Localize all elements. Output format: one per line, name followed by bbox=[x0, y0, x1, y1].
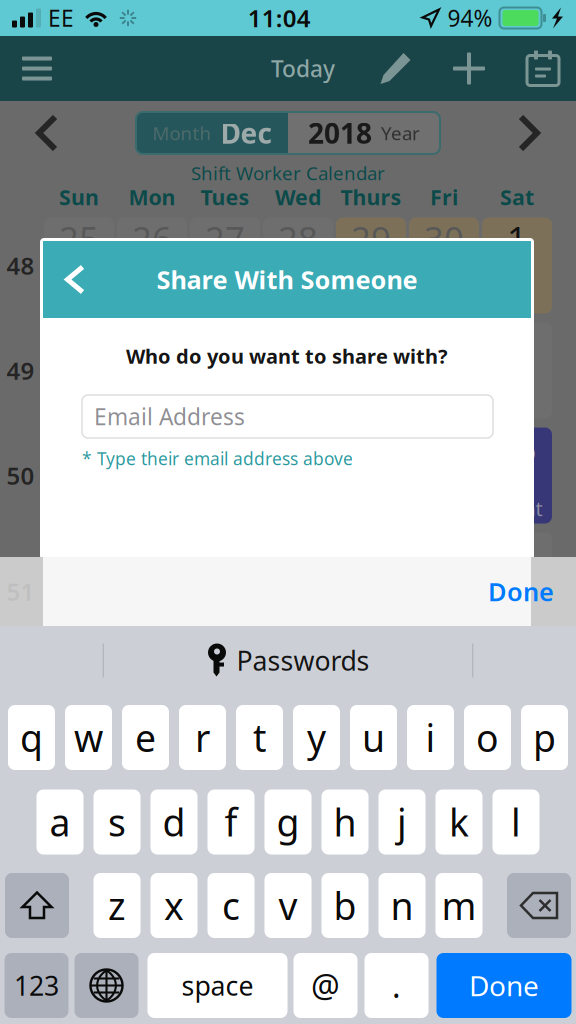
staticText: o bbox=[476, 713, 499, 762]
button[interactable]: b bbox=[321, 873, 368, 938]
button[interactable]: 123 bbox=[4, 953, 68, 1018]
staticText: 28 bbox=[278, 215, 318, 261]
button[interactable]: h bbox=[321, 789, 368, 854]
button[interactable]: Switch keyboard bbox=[74, 953, 138, 1018]
button[interactable]: Edit bbox=[366, 37, 426, 99]
staticText: 18 bbox=[205, 530, 245, 576]
button[interactable]: Shift bbox=[5, 873, 69, 938]
button[interactable]: t bbox=[236, 705, 283, 770]
button[interactable]: y bbox=[293, 705, 340, 770]
button[interactable]: f bbox=[207, 789, 254, 854]
staticText: 51 bbox=[6, 565, 34, 596]
staticText: Passwords bbox=[236, 643, 369, 678]
button[interactable]: Back bbox=[43, 241, 107, 318]
button[interactable]: p bbox=[521, 705, 568, 770]
staticText: f bbox=[224, 797, 237, 847]
staticText: 13 bbox=[351, 425, 391, 471]
staticText: 5 bbox=[288, 320, 308, 366]
button[interactable]: . bbox=[364, 953, 428, 1018]
button[interactable]: Done bbox=[436, 953, 571, 1018]
staticText: Month bbox=[152, 121, 211, 145]
staticText: Night bbox=[491, 495, 542, 522]
staticText: p bbox=[533, 713, 556, 762]
staticText: c bbox=[222, 881, 240, 930]
staticText: h bbox=[333, 797, 356, 847]
staticText: 26 bbox=[132, 215, 172, 261]
button[interactable]: m bbox=[435, 873, 482, 938]
staticText: 25 bbox=[59, 215, 99, 261]
staticText: Tues bbox=[200, 183, 249, 211]
staticText: 20 bbox=[351, 530, 391, 576]
button[interactable]: g bbox=[264, 789, 311, 854]
staticText: 16 bbox=[59, 530, 99, 576]
button[interactable]: c bbox=[207, 873, 254, 938]
staticText: Email Address bbox=[94, 401, 245, 431]
staticText: 48 bbox=[6, 250, 34, 281]
staticText: Fri bbox=[430, 183, 458, 211]
staticText: u bbox=[362, 713, 385, 762]
button[interactable]: r bbox=[179, 705, 226, 770]
button[interactable]: e bbox=[122, 705, 169, 770]
staticText: v bbox=[278, 881, 297, 930]
staticText: m bbox=[441, 881, 476, 930]
staticText: r bbox=[195, 713, 210, 762]
staticText: 50 bbox=[6, 460, 34, 491]
button[interactable]: n bbox=[378, 873, 425, 938]
staticText: n bbox=[390, 881, 413, 930]
button[interactable]: Delete bbox=[507, 873, 571, 938]
button[interactable]: u bbox=[350, 705, 397, 770]
staticText: 11:04 bbox=[248, 2, 311, 34]
button[interactable]: Done bbox=[466, 557, 576, 626]
staticText: g bbox=[276, 797, 299, 847]
staticText: Mon bbox=[128, 183, 175, 211]
staticText: Dec bbox=[220, 114, 271, 152]
button[interactable]: @ bbox=[293, 953, 357, 1018]
staticText: * Type their email address above bbox=[82, 447, 353, 470]
staticText: 51 bbox=[6, 576, 34, 607]
button[interactable]: x bbox=[150, 873, 197, 938]
button[interactable]: v bbox=[264, 873, 311, 938]
staticText: 4 bbox=[215, 320, 235, 366]
staticText: 30 bbox=[424, 215, 464, 261]
button[interactable]: Today bbox=[260, 37, 346, 99]
staticText: Sat bbox=[500, 183, 534, 211]
staticText: @ bbox=[311, 964, 340, 1007]
button[interactable]: i bbox=[407, 705, 454, 770]
staticText: 14 bbox=[424, 425, 464, 471]
staticText: w bbox=[74, 713, 103, 762]
button[interactable]: w bbox=[65, 705, 112, 770]
staticText: space bbox=[181, 968, 253, 1003]
staticText: 10 bbox=[132, 425, 172, 471]
button[interactable]: o bbox=[464, 705, 511, 770]
button[interactable]: z bbox=[93, 873, 140, 938]
staticText: 3 bbox=[142, 320, 162, 366]
button[interactable]: Calendar bbox=[513, 37, 573, 99]
button[interactable]: k bbox=[435, 789, 482, 854]
button[interactable]: space bbox=[147, 953, 287, 1018]
staticText: 27 bbox=[205, 215, 245, 261]
button[interactable]: Menu bbox=[7, 37, 67, 99]
staticText: Shift Worker Calendar bbox=[191, 161, 385, 185]
button[interactable]: l bbox=[492, 789, 539, 854]
staticText: 6 bbox=[361, 320, 381, 366]
button[interactable]: s bbox=[93, 789, 140, 854]
staticText: x bbox=[164, 881, 184, 930]
button[interactable]: Add bbox=[439, 37, 499, 99]
button[interactable]: d bbox=[150, 789, 197, 854]
button[interactable]: q bbox=[8, 705, 55, 770]
staticText: 29 bbox=[351, 215, 391, 261]
staticText: EE bbox=[48, 3, 74, 33]
staticText: k bbox=[449, 797, 469, 847]
staticText: 19 bbox=[278, 530, 318, 576]
button[interactable]: a bbox=[36, 789, 83, 854]
staticText: a bbox=[49, 797, 70, 847]
staticText: 22 bbox=[497, 530, 537, 576]
staticText: q bbox=[20, 713, 43, 762]
staticText: d bbox=[162, 797, 185, 847]
staticText: Wed bbox=[275, 183, 321, 211]
staticText: 49 bbox=[6, 355, 34, 386]
button[interactable]: j bbox=[378, 789, 425, 854]
staticText: Share With Someone bbox=[156, 263, 417, 296]
staticText: 11 bbox=[205, 425, 245, 471]
